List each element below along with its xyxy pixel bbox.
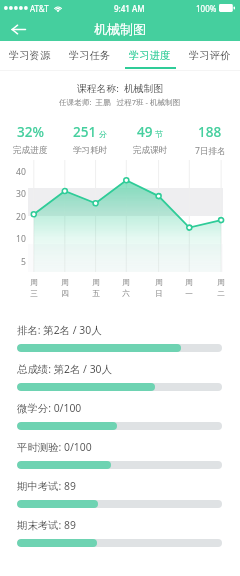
button[interactable] [17,383,222,391]
staticText: 微学分: 0/100 [17,401,82,415]
button[interactable] [17,422,222,430]
staticText: 5 [21,256,26,268]
staticText: 节 [155,129,163,139]
staticText: 20 [16,211,26,223]
staticText: 周 三 [30,278,38,298]
staticText: 周 一 [185,278,193,298]
button[interactable] [17,344,222,352]
staticText: 30 [16,188,26,200]
staticText: 平时测验: 0/100 [17,440,92,454]
button[interactable] [17,539,222,547]
staticText: 49 [137,123,153,141]
staticText: 学习评价 [189,49,231,62]
button[interactable]: 学习进度 [120,41,180,71]
staticText: 完成进度 [13,145,48,156]
staticText: 9:41 AM [114,3,145,14]
staticText: 完成课时 [133,145,168,156]
staticText: 课程名称: 机械制图 [77,82,164,95]
staticText: 周 二 [217,278,225,298]
staticText: 188 [198,123,222,141]
staticText: 任课老师: 王鹏 过程7班 - 机械制图 [59,97,181,107]
staticText: 32% [17,123,44,141]
staticText: 学习耗时 [73,145,108,156]
staticText: 周 日 [155,278,163,298]
button[interactable]: Back [6,17,30,41]
button[interactable]: 学习任务 [60,41,120,71]
staticText: 分 [99,129,107,139]
button[interactable] [17,500,222,508]
staticText: 100% [196,3,217,14]
button[interactable]: 学习评价 [180,41,240,71]
staticText: 期末考试: 89 [17,518,76,532]
staticText: 251 [73,123,97,141]
staticText: 学习进度 [129,49,171,62]
button[interactable] [17,461,222,469]
staticText: 期中考试: 89 [17,479,76,493]
staticText: 40 [16,166,26,178]
staticText: 学习资源 [9,49,51,62]
button[interactable]: 学习资源 [0,41,60,71]
staticText: 7日排名 [195,145,226,157]
staticText: 排名: 第2名 / 30人 [17,323,102,337]
staticText: 周 六 [122,278,130,298]
staticText: AT&T [30,3,49,14]
staticText: 10 [16,233,26,245]
staticText: 机械制图 [94,21,146,37]
staticText: 总成绩: 第2名 / 30人 [17,362,112,376]
staticText: 学习任务 [69,49,111,62]
staticText: 周 五 [92,278,100,298]
staticText: 周 四 [61,278,69,298]
